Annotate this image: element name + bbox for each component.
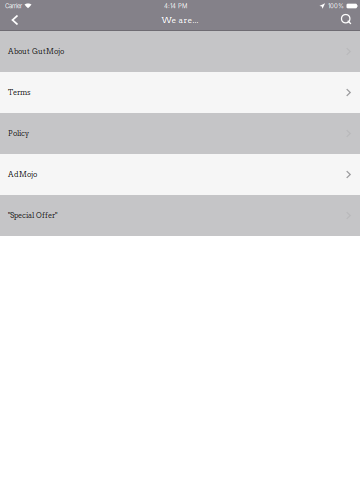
button[interactable]: About GutMojo: [0, 31, 360, 72]
staticText: 100%: [328, 2, 344, 10]
staticText: We are...: [161, 15, 198, 25]
button[interactable]: AdMojo: [0, 154, 360, 195]
button[interactable]: Search: [334, 12, 360, 30]
button[interactable]: Back: [0, 12, 30, 30]
staticText: Policy: [8, 129, 29, 138]
staticText: About GutMojo: [8, 47, 64, 56]
staticText: "Special Offer": [8, 211, 57, 220]
staticText: 4:14 PM: [164, 2, 187, 10]
staticText: AdMojo: [8, 170, 37, 179]
button[interactable]: Policy: [0, 113, 360, 154]
button[interactable]: "Special Offer": [0, 195, 360, 236]
staticText: Carrier: [5, 2, 22, 10]
staticText: Terms: [8, 88, 31, 97]
button[interactable]: Terms: [0, 72, 360, 113]
